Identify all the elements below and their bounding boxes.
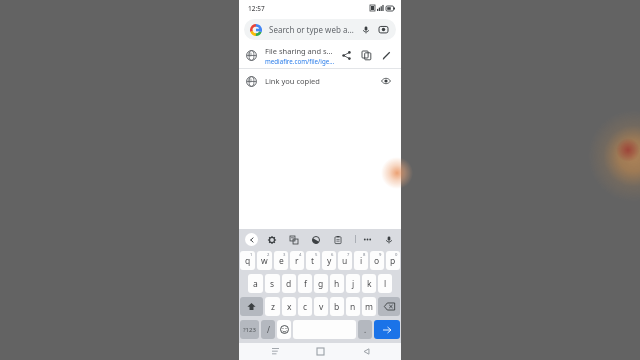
staticText: i <box>360 255 363 267</box>
button[interactable]: Share <box>338 47 354 63</box>
button[interactable]: Edit <box>378 47 394 63</box>
staticText: y <box>327 255 332 267</box>
staticText: m <box>365 301 373 313</box>
button[interactable]: Theme <box>309 233 322 246</box>
button[interactable]: Preview <box>378 73 394 89</box>
button[interactable]: Back <box>356 343 376 360</box>
staticText: 4 <box>299 252 302 258</box>
staticText: mediafire.com/file/igeo… <box>265 57 335 65</box>
staticText: a <box>253 278 258 290</box>
button[interactable]: Search or type web address <box>244 19 396 40</box>
button[interactable]: . <box>358 320 372 339</box>
staticText: q <box>245 255 251 267</box>
button[interactable]: Copy <box>358 47 374 63</box>
button[interactable]: File sharing and stor… <box>239 42 401 68</box>
staticText: 8 <box>363 252 366 258</box>
button[interactable]: y <box>322 251 336 270</box>
button[interactable]: s <box>265 274 280 293</box>
staticText: File sharing and stor… <box>265 46 335 56</box>
staticText: t <box>311 255 315 267</box>
staticText: . <box>364 324 367 335</box>
button[interactable]: v <box>314 297 328 316</box>
staticText: z <box>271 301 275 313</box>
staticText: 1 <box>250 252 253 258</box>
button[interactable]: p <box>386 251 400 270</box>
button[interactable]: Clipboard <box>331 233 344 246</box>
staticText: r <box>295 255 299 267</box>
button[interactable]: r <box>290 251 304 270</box>
button[interactable]: d <box>282 274 296 293</box>
staticText: p <box>390 255 396 267</box>
staticText: l <box>384 278 387 290</box>
staticText: x <box>287 301 292 313</box>
button[interactable]: Home <box>310 343 330 360</box>
staticText: ?123 <box>243 326 256 334</box>
button[interactable]: Backspace <box>378 297 400 316</box>
staticText: w <box>261 255 268 267</box>
staticText: Link you copied <box>265 76 378 86</box>
button[interactable]: e <box>274 251 288 270</box>
button[interactable]: Voice input <box>382 233 395 246</box>
button[interactable]: w <box>257 251 272 270</box>
staticText: k <box>367 278 372 290</box>
button[interactable]: g <box>314 274 328 293</box>
button[interactable]: k <box>362 274 376 293</box>
staticText: 12:57 <box>248 4 265 13</box>
staticText: b <box>334 301 340 313</box>
staticText: Search or type web address <box>269 24 355 35</box>
staticText: d <box>286 278 292 290</box>
button[interactable]: m <box>362 297 376 316</box>
staticText: j <box>352 278 355 290</box>
button[interactable]: c <box>298 297 312 316</box>
button[interactable]: Expand toolbar <box>245 233 258 246</box>
staticText: o <box>374 255 380 267</box>
button[interactable]: ?123 <box>240 320 259 339</box>
button[interactable]: Emoji <box>277 320 291 339</box>
button[interactable]: o <box>370 251 384 270</box>
button[interactable]: / <box>261 320 275 339</box>
button[interactable]: t <box>306 251 320 270</box>
staticText: e <box>279 255 284 267</box>
staticText: g <box>318 278 324 290</box>
staticText: u <box>342 255 348 267</box>
button[interactable]: a <box>248 274 263 293</box>
button[interactable]: x <box>282 297 296 316</box>
button[interactable]: n <box>346 297 360 316</box>
button[interactable]: Link you copied <box>239 69 401 93</box>
staticText: 9 <box>379 252 382 258</box>
staticText: 0 <box>395 252 398 258</box>
staticText: 2 <box>267 252 270 258</box>
staticText: 3 <box>283 252 286 258</box>
button[interactable]: Voice search <box>359 23 372 36</box>
staticText: 6 <box>331 252 334 258</box>
button[interactable]: Shift <box>240 297 263 316</box>
button[interactable]: q <box>240 251 255 270</box>
staticText: v <box>319 301 324 313</box>
button[interactable]: More options <box>361 233 374 246</box>
button[interactable]: Translate <box>287 233 300 246</box>
button[interactable]: Go <box>374 320 400 339</box>
button[interactable]: l <box>378 274 392 293</box>
button[interactable]: Settings <box>265 233 278 246</box>
staticText: n <box>350 301 356 313</box>
button[interactable]: z <box>265 297 280 316</box>
button[interactable]: b <box>330 297 344 316</box>
staticText: f <box>304 278 307 290</box>
staticText: c <box>303 301 308 313</box>
staticText: 7 <box>347 252 350 258</box>
button[interactable]: i <box>354 251 368 270</box>
button[interactable]: Search with camera <box>377 23 390 36</box>
button[interactable]: j <box>346 274 360 293</box>
button[interactable]: f <box>298 274 312 293</box>
staticText: h <box>334 278 340 290</box>
staticText: 5 <box>315 252 318 258</box>
staticText: s <box>270 278 275 290</box>
button[interactable]: u <box>338 251 352 270</box>
staticText: / <box>267 324 270 335</box>
button[interactable]: h <box>330 274 344 293</box>
button[interactable]: Recents <box>265 343 285 360</box>
